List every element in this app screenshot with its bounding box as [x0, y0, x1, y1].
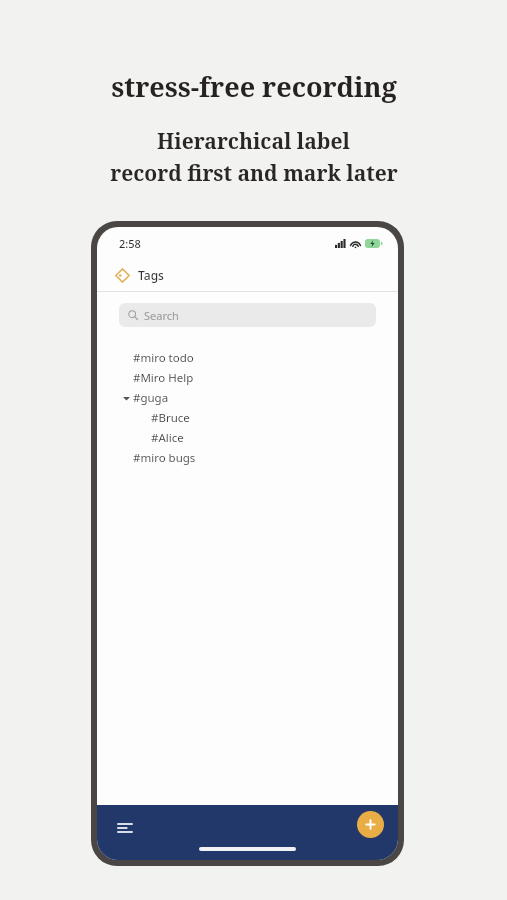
staticText: #Alice	[151, 430, 184, 446]
staticText: #Miro Help	[133, 370, 194, 386]
button[interactable]: #miro todo	[97, 348, 398, 368]
staticText: stress-free recording	[111, 68, 397, 105]
button[interactable]: Add tag	[357, 811, 384, 838]
staticText: #miro bugs	[133, 450, 196, 466]
staticText: 2:58	[119, 236, 141, 251]
staticText: #Bruce	[151, 410, 190, 426]
button[interactable]: Tags	[97, 259, 398, 291]
staticText: Hierarchical label	[157, 127, 350, 156]
staticText: Search	[144, 308, 179, 323]
button[interactable]: #guga	[97, 388, 398, 408]
button[interactable]: #Bruce	[97, 408, 398, 428]
button[interactable]: #Alice	[97, 428, 398, 448]
staticText: Tags	[138, 267, 164, 283]
button[interactable]: #miro bugs	[97, 448, 398, 468]
staticText: record first and mark later	[110, 159, 398, 188]
staticText: #guga	[133, 390, 169, 406]
button[interactable]: Search	[119, 303, 376, 327]
button[interactable]: #Miro Help	[97, 368, 398, 388]
staticText: #miro todo	[133, 350, 194, 366]
button[interactable]: Menu	[111, 814, 139, 842]
